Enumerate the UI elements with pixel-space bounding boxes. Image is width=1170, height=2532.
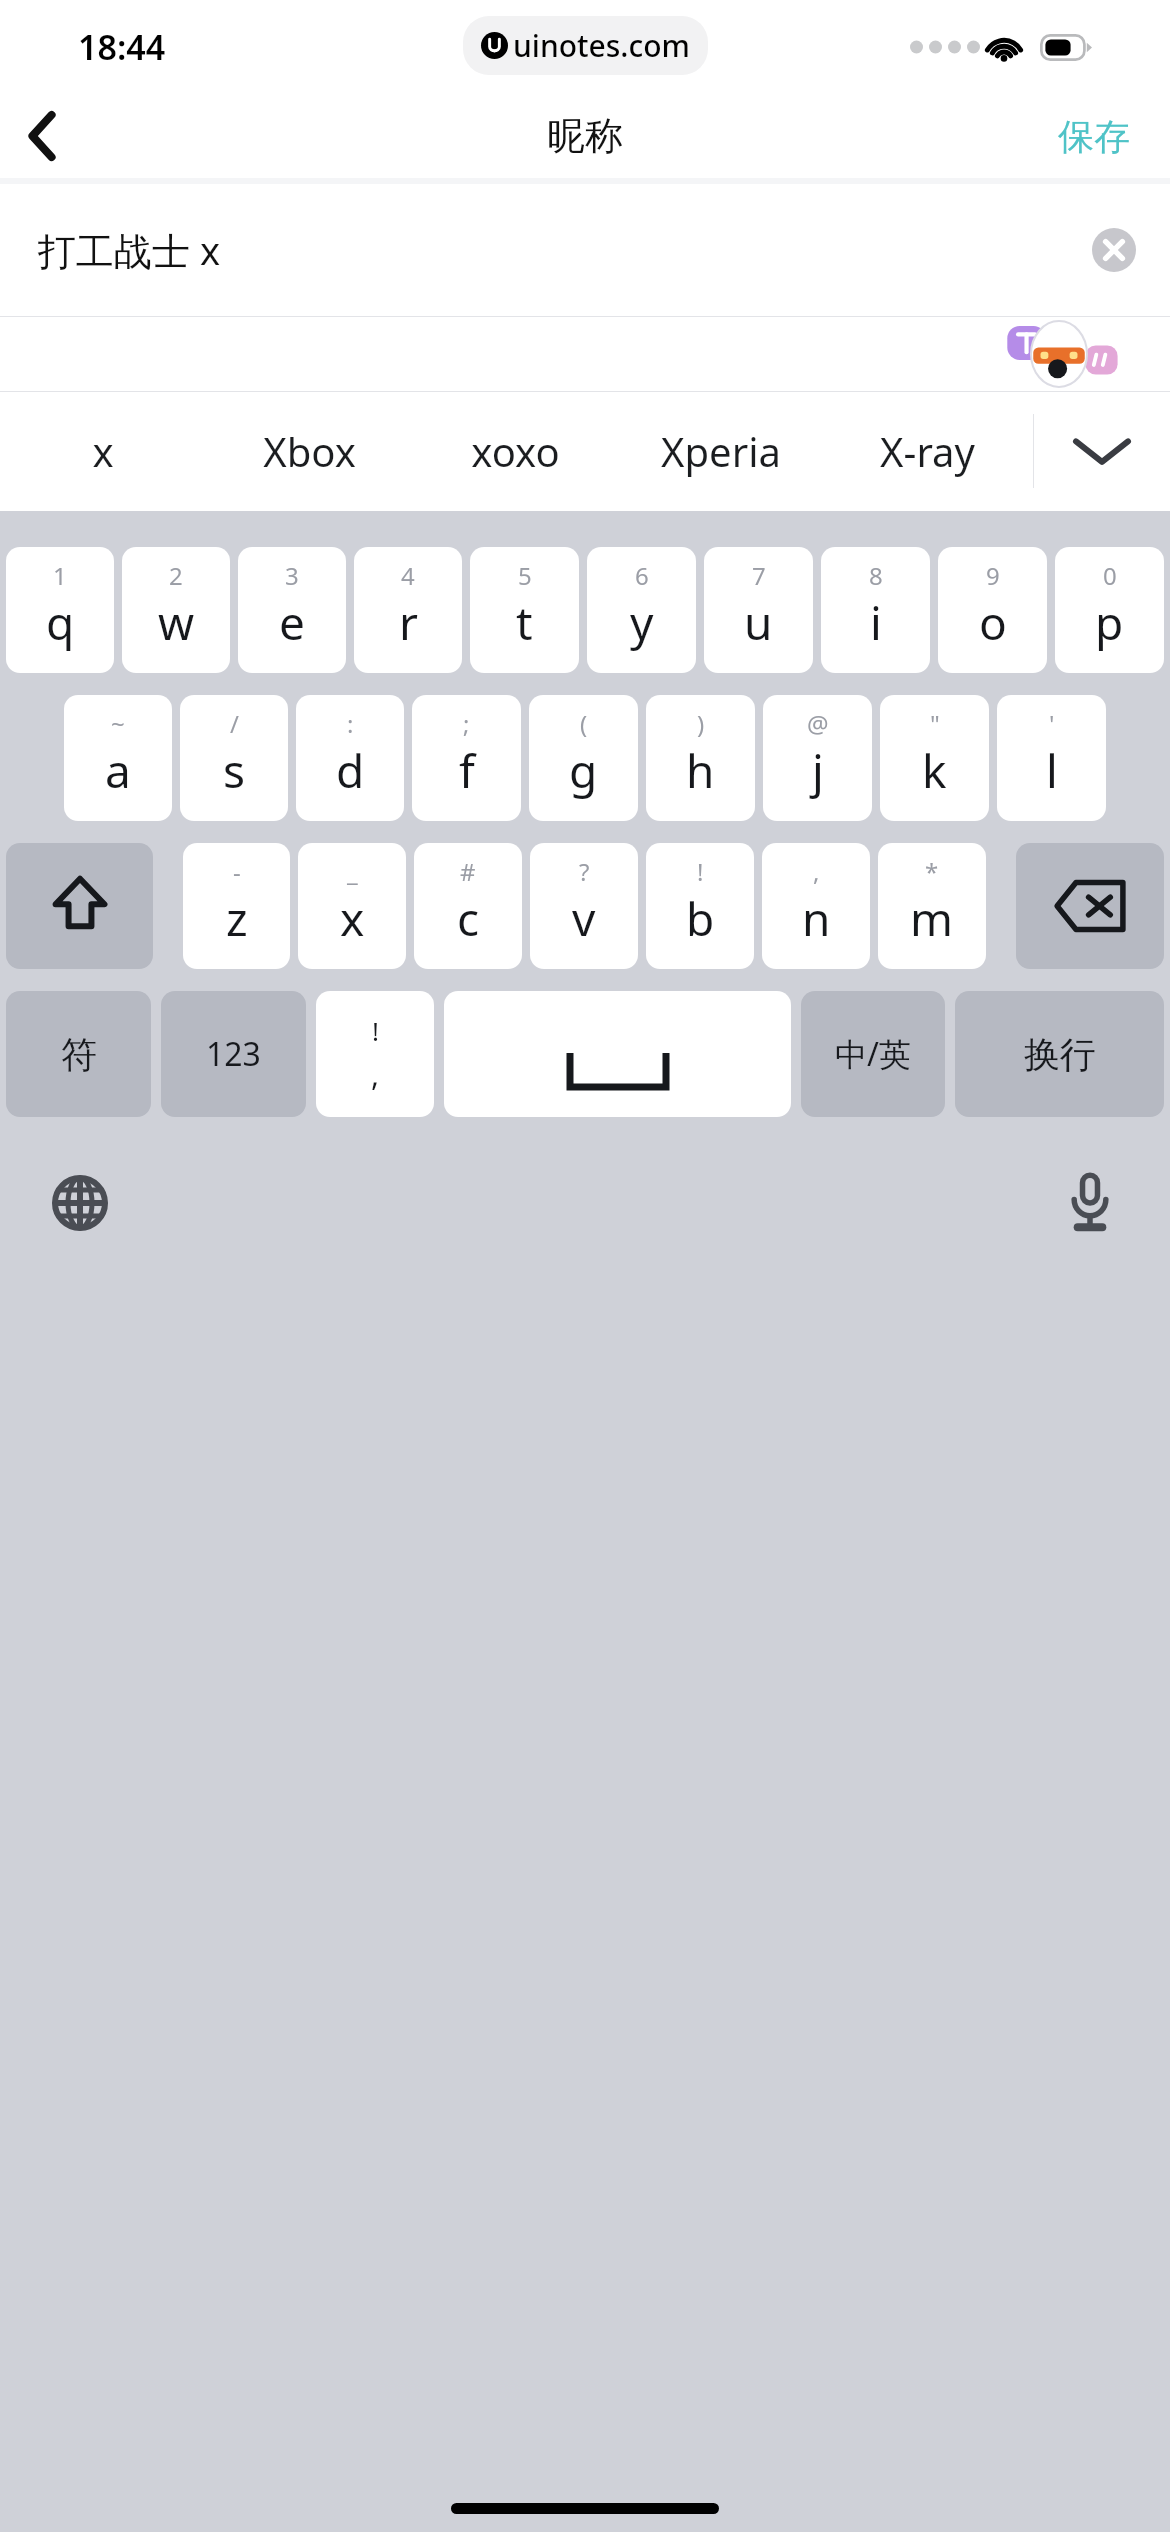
staticText: h (686, 739, 715, 802)
staticText: g (569, 739, 598, 802)
staticText: ; (463, 707, 470, 740)
button[interactable]: ! (316, 991, 434, 1117)
button[interactable]: 5 (470, 547, 579, 673)
staticText: Xperia (661, 424, 781, 478)
button[interactable]: 6 (587, 547, 696, 673)
staticText: ! (372, 1013, 379, 1048)
staticText: 4 (401, 559, 415, 592)
staticText: x (92, 424, 114, 478)
button[interactable]: - (183, 843, 290, 969)
button[interactable]: / (180, 695, 288, 821)
button[interactable]: # (414, 843, 522, 969)
button[interactable]: ? (530, 843, 638, 969)
button[interactable]: 保存 (1018, 100, 1170, 173)
button[interactable]: , (762, 843, 870, 969)
staticText: X-ray (880, 424, 975, 478)
staticText: k (922, 739, 947, 802)
staticText: 1 (53, 559, 67, 592)
button[interactable]: Xperia (618, 391, 824, 511)
staticText: 保存 (1058, 114, 1130, 159)
button[interactable]: Back (0, 94, 84, 178)
staticText: o (979, 591, 1007, 654)
button[interactable]: Sticker assistant (1004, 319, 1114, 389)
button[interactable]: xoxo (412, 391, 618, 511)
staticText: ~ (111, 707, 125, 740)
button[interactable]: " (880, 695, 989, 821)
button[interactable]: @ (763, 695, 872, 821)
staticText: * (925, 855, 939, 888)
staticText: ! (697, 855, 704, 888)
button[interactable]: ~ (64, 695, 172, 821)
staticText: c (457, 887, 480, 950)
button[interactable]: ; (412, 695, 521, 821)
button[interactable]: Hide suggestions (1034, 391, 1170, 511)
staticText: n (802, 887, 831, 950)
staticText: u (744, 591, 773, 654)
staticText: m (910, 887, 954, 950)
staticText: 昵称 (547, 112, 623, 160)
button[interactable]: Xbox (206, 391, 412, 511)
button[interactable]: * (878, 843, 986, 969)
staticText: Xbox (263, 424, 356, 478)
staticText: p (1095, 591, 1124, 654)
staticText: 9 (986, 559, 1000, 592)
staticText: l (1046, 739, 1058, 802)
staticText: xoxo (471, 424, 560, 478)
button[interactable]: ( (529, 695, 638, 821)
staticText: z (226, 887, 248, 950)
staticText: 换行 (1024, 1032, 1096, 1077)
staticText: - (233, 855, 241, 888)
staticText: j (812, 739, 824, 802)
staticText: b (686, 887, 715, 950)
staticText: / (230, 707, 239, 740)
staticText: a (105, 739, 131, 802)
button[interactable]: Shift (6, 843, 153, 969)
button[interactable]: : (296, 695, 404, 821)
staticText: ? (579, 855, 590, 888)
button[interactable]: 8 (821, 547, 930, 673)
button[interactable]: ! (646, 843, 754, 969)
staticText: @ (807, 707, 829, 740)
staticText: 7 (752, 559, 766, 592)
button[interactable]: 9 (938, 547, 1047, 673)
staticText: , (371, 1054, 380, 1095)
button[interactable]: 符 (6, 991, 151, 1117)
button[interactable]: 1 (6, 547, 114, 673)
staticText: , (813, 855, 820, 888)
staticText: 打工战士 x (38, 224, 220, 276)
staticText: uinotes.com (513, 25, 690, 66)
button[interactable]: 中/英 (801, 991, 945, 1117)
button[interactable]: Space (444, 991, 791, 1117)
button[interactable]: Change keyboard language (34, 1157, 126, 1249)
staticText: 8 (869, 559, 883, 592)
staticText: 符 (61, 1032, 97, 1077)
staticText: 2 (169, 559, 183, 592)
staticText: ' (1049, 707, 1055, 740)
button[interactable]: 123 (161, 991, 306, 1117)
staticText: r (399, 591, 418, 654)
staticText: 5 (518, 559, 532, 592)
button[interactable]: Backspace (1016, 843, 1164, 969)
staticText: q (46, 591, 75, 654)
staticText: " (930, 707, 940, 740)
button[interactable]: ) (646, 695, 755, 821)
staticText: 18:44 (78, 24, 166, 70)
staticText: w (158, 591, 195, 654)
staticText: i (870, 591, 882, 654)
button[interactable]: Clear text (1082, 218, 1146, 282)
staticText: 3 (285, 559, 299, 592)
button[interactable]: _ (298, 843, 406, 969)
button[interactable]: X-ray (824, 391, 1030, 511)
button[interactable]: Voice input (1044, 1157, 1136, 1249)
button[interactable]: 4 (354, 547, 462, 673)
button[interactable]: ' (997, 695, 1106, 821)
button[interactable]: 0 (1055, 547, 1164, 673)
button[interactable]: 3 (238, 547, 346, 673)
button[interactable]: x (0, 391, 206, 511)
staticText: ) (697, 707, 705, 740)
staticText: 123 (206, 1032, 261, 1076)
staticText: v (572, 887, 596, 950)
button[interactable]: 2 (122, 547, 230, 673)
button[interactable]: 7 (704, 547, 813, 673)
button[interactable]: 换行 (955, 991, 1164, 1117)
